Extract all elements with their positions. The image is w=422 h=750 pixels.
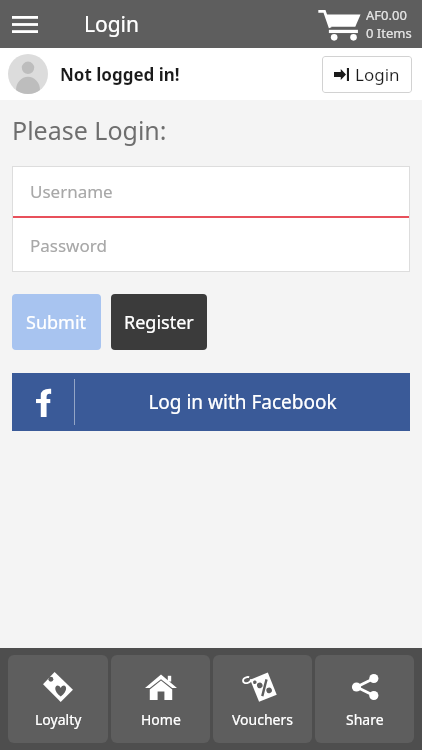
staticText: Log in with Facebook [148, 389, 337, 415]
button[interactable]: Loyalty [8, 655, 108, 743]
staticText: Home [141, 710, 181, 729]
button[interactable]: Vouchers [213, 655, 312, 743]
staticText: Vouchers [232, 710, 293, 729]
button[interactable]: Password [12, 218, 410, 272]
button[interactable]: Shopping cart, 0 items [317, 6, 412, 42]
button[interactable]: Home [111, 655, 210, 743]
staticText: Loyalty [35, 710, 82, 729]
staticText: Password [30, 234, 107, 257]
staticText: Submit [26, 310, 87, 335]
staticText: Register [124, 310, 194, 335]
staticText: AF0.00 [366, 6, 407, 24]
staticText: Username [30, 180, 113, 203]
staticText: Login [84, 10, 140, 39]
button[interactable]: Submit [12, 294, 101, 350]
button[interactable]: Open navigation menu [0, 0, 50, 48]
staticText: 0 Items [366, 24, 412, 42]
staticText: Share [346, 710, 384, 729]
staticText: Login [355, 63, 400, 86]
staticText: Not logged in! [60, 63, 180, 86]
button[interactable]: Username [12, 166, 410, 216]
button[interactable]: Login [322, 56, 412, 93]
staticText: Please Login: [12, 113, 167, 147]
button[interactable]: Log in with Facebook [12, 373, 410, 431]
button[interactable]: Share [315, 655, 414, 743]
button[interactable]: Register [111, 294, 207, 350]
